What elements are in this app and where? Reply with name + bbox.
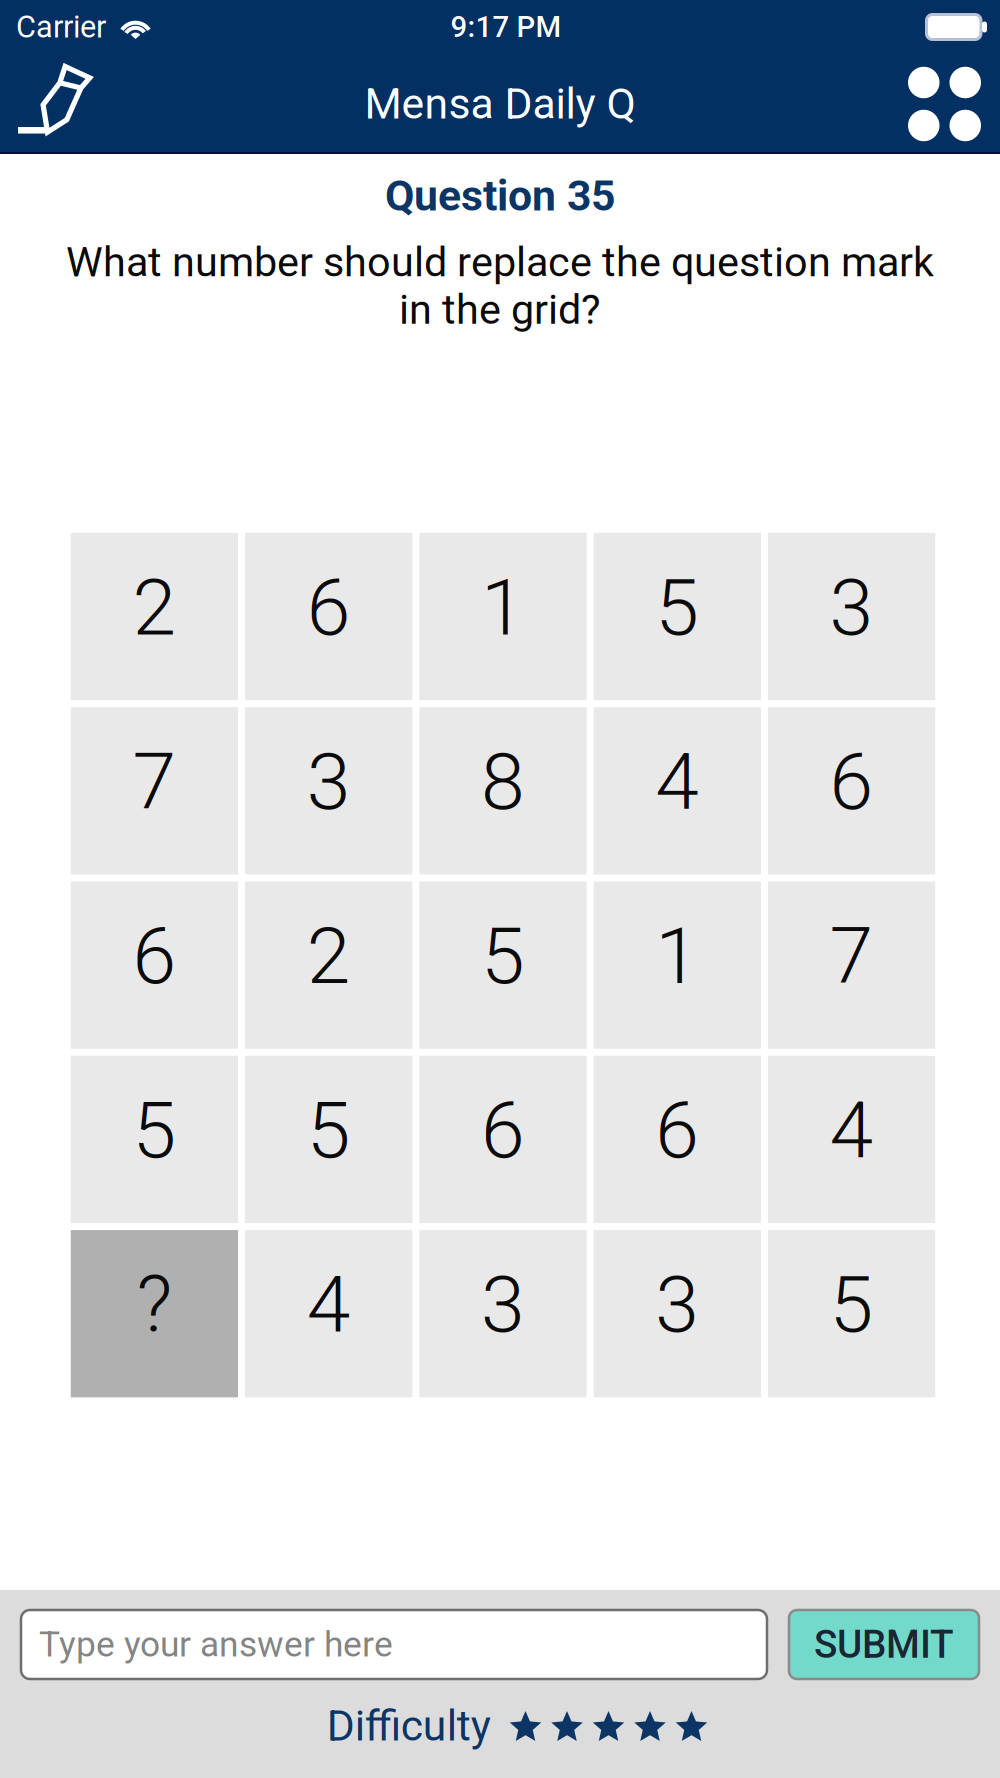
staticText: What number should replace the question … [66,238,934,286]
staticText: SUBMIT [814,1622,954,1667]
staticText: 3 [307,736,351,828]
staticText: Difficulty [327,1701,491,1751]
staticText: 4 [655,736,699,828]
staticText: 6 [481,1084,525,1176]
staticText: 3 [481,1259,525,1351]
staticText: Question 35 [385,171,615,221]
button[interactable]: Menu [889,54,1000,154]
staticText: Mensa Daily Q [364,79,635,129]
staticText: Type your answer here [39,1624,393,1665]
staticText: 5 [307,1084,351,1176]
staticText: Carrier [16,9,106,45]
staticText: 9:17 PM [450,10,561,44]
staticText: 8 [481,736,525,828]
staticText: ? [136,1259,172,1351]
staticText: 5 [830,1259,874,1351]
staticText: 2 [132,561,176,654]
staticText: 6 [655,1084,699,1176]
staticText: 5 [655,561,699,654]
staticText: 3 [655,1259,699,1351]
staticText: 5 [481,910,525,1002]
staticText: 1 [655,910,699,1002]
staticText: 6 [830,736,874,828]
button[interactable]: Compose [0,54,111,154]
staticText: 7 [132,736,176,828]
button[interactable]: SUBMIT [789,1610,979,1679]
staticText: 1 [481,561,525,654]
staticText: in the grid? [399,285,601,334]
staticText: 6 [307,561,351,654]
staticText: 6 [132,910,176,1002]
staticText: 7 [830,910,874,1002]
staticText: 4 [830,1084,874,1176]
staticText: 2 [307,910,351,1002]
staticText: 5 [132,1084,176,1176]
staticText: 4 [307,1259,351,1351]
staticText: 3 [830,561,874,654]
